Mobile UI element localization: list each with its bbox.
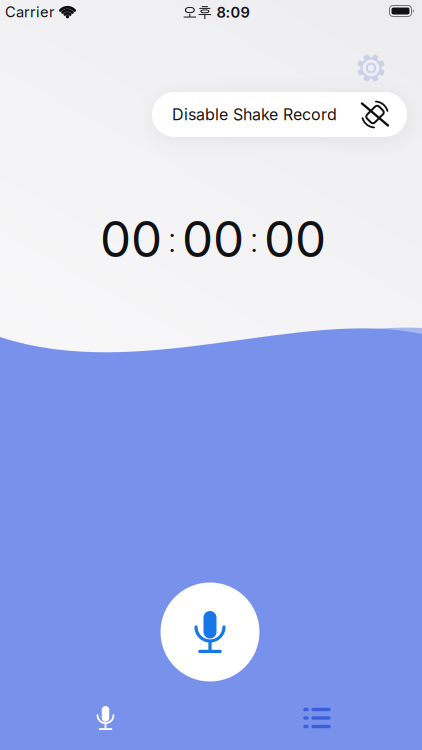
staticText: 00	[182, 209, 244, 269]
button[interactable]: Record tab	[81, 698, 129, 738]
button[interactable]: Settings	[349, 46, 393, 90]
staticText: :	[250, 217, 258, 261]
button[interactable]: Record	[160, 582, 259, 681]
staticText: 00	[264, 209, 326, 269]
staticText: Carrier	[5, 3, 55, 21]
button[interactable]: Recordings list	[292, 698, 340, 738]
staticText: 오후 8:09	[182, 3, 249, 21]
staticText: 00	[100, 209, 162, 269]
staticText: Disable Shake Record	[172, 105, 337, 124]
button[interactable]: Disable Shake Record	[152, 92, 407, 137]
staticText: :	[168, 217, 176, 261]
